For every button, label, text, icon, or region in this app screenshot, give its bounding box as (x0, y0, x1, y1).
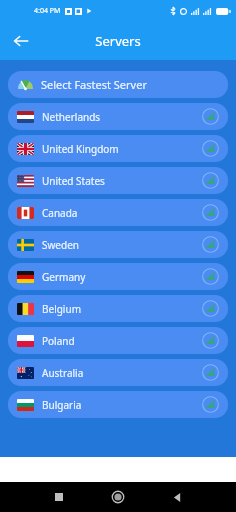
button[interactable]: Poland (8, 327, 228, 354)
button[interactable]: Australia (8, 359, 228, 386)
staticText: Select Fastest Server (41, 77, 147, 92)
staticText: Bulgaria (42, 398, 82, 412)
button[interactable]: Select Fastest Server (8, 71, 228, 98)
staticText: Belgium (42, 302, 81, 316)
staticText: Servers (95, 32, 141, 50)
button[interactable]: Netherlands (8, 103, 228, 130)
button[interactable]: Bulgaria (8, 391, 228, 418)
button[interactable]: Belgium (8, 295, 228, 322)
button[interactable]: Germany (8, 263, 228, 290)
button[interactable]: Canada (8, 199, 228, 226)
button[interactable]: Sweden (8, 231, 228, 258)
button[interactable]: Back (8, 28, 34, 54)
staticText: United States (42, 174, 105, 188)
button[interactable]: United Kingdom (8, 135, 228, 162)
staticText: 4:04 PM (34, 6, 61, 16)
staticText: Netherlands (42, 110, 101, 124)
button[interactable]: United States (8, 167, 228, 194)
staticText: Germany (42, 270, 86, 284)
button[interactable]: Home (107, 486, 129, 508)
staticText: Australia (42, 366, 84, 380)
staticText: Canada (42, 206, 78, 220)
staticText: United Kingdom (42, 142, 119, 156)
staticText: Poland (42, 334, 75, 348)
button[interactable]: Back (166, 486, 188, 508)
staticText: Sweden (42, 238, 79, 252)
button[interactable]: Recent apps (48, 486, 70, 508)
